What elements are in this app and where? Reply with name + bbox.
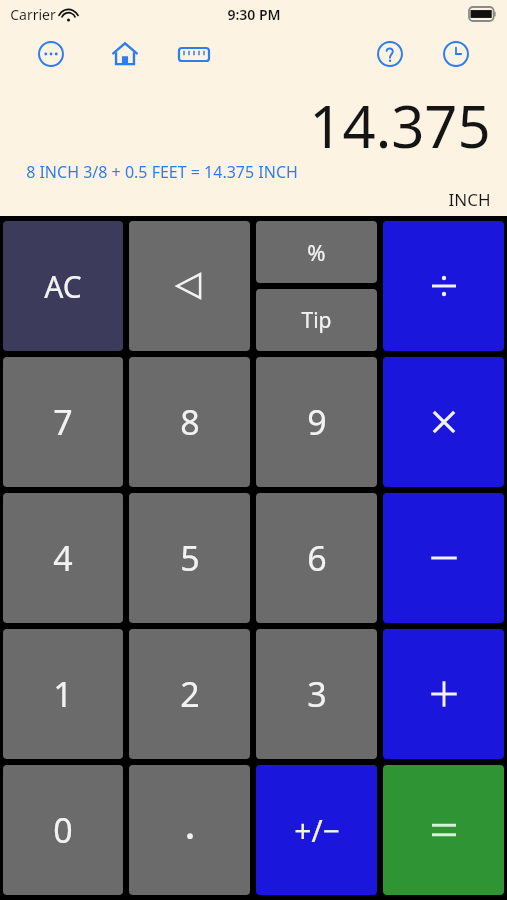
button[interactable]: Tip: [256, 289, 377, 351]
button[interactable]: 5: [129, 493, 250, 623]
button[interactable]: 3: [256, 629, 377, 759]
button[interactable]: History: [439, 37, 473, 71]
staticText: +/−: [294, 810, 340, 851]
button[interactable]: Backspace: [129, 221, 250, 351]
staticText: 7: [53, 399, 73, 445]
button[interactable]: Multiply: [383, 357, 504, 487]
button[interactable]: Equals: [383, 765, 504, 895]
button[interactable]: Plus: [383, 629, 504, 759]
button[interactable]: Help: [373, 37, 407, 71]
button[interactable]: 0: [3, 765, 123, 895]
button[interactable]: Minus: [383, 493, 504, 623]
staticText: 9: [307, 399, 327, 445]
button[interactable]: 4: [3, 493, 123, 623]
button[interactable]: 2: [129, 629, 250, 759]
staticText: 3: [307, 671, 327, 717]
button[interactable]: More: [34, 37, 68, 71]
button[interactable]: 1: [3, 629, 123, 759]
staticText: 9:30 PM: [227, 5, 281, 24]
button[interactable]: 7: [3, 357, 123, 487]
staticText: 8 INCH 3/8 + 0.5 FEET = 14.375 INCH: [26, 161, 298, 183]
staticText: 8: [180, 399, 200, 445]
button[interactable]: 6: [256, 493, 377, 623]
button[interactable]: Divide: [383, 221, 504, 351]
button[interactable]: 9: [256, 357, 377, 487]
staticText: 1: [53, 671, 73, 717]
staticText: 2: [180, 671, 200, 717]
staticText: 4: [53, 535, 73, 581]
button[interactable]: 8: [129, 357, 250, 487]
staticText: %: [307, 237, 326, 267]
staticText: Tip: [301, 306, 332, 335]
button[interactable]: Decimal point: [129, 765, 250, 895]
staticText: AC: [44, 266, 82, 307]
staticText: INCH: [448, 188, 491, 211]
staticText: Carrier: [10, 5, 56, 24]
button[interactable]: %: [256, 221, 377, 283]
button[interactable]: +/−: [256, 765, 377, 895]
button[interactable]: Home: [108, 37, 142, 71]
staticText: 14.375: [309, 86, 491, 158]
staticText: 6: [307, 535, 327, 581]
staticText: 5: [180, 535, 200, 581]
staticText: 0: [53, 807, 73, 853]
button[interactable]: AC: [3, 221, 123, 351]
button[interactable]: Ruler: [177, 37, 211, 71]
